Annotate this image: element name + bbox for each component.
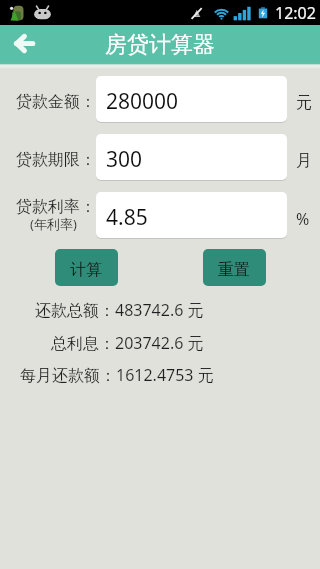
staticText: 贷款期限： [16, 150, 96, 170]
staticText: % [296, 208, 310, 230]
button[interactable]: 4.85 [96, 192, 287, 238]
button[interactable]: 280000 [96, 76, 287, 122]
staticText: 月 [296, 151, 312, 171]
staticText: 计算 [70, 260, 102, 280]
staticText: 还款总额：483742.6 元 [35, 299, 204, 321]
button[interactable]: 300 [96, 134, 287, 180]
staticText: 贷款金额： [16, 92, 96, 112]
staticText: 12:02 [275, 2, 316, 24]
staticText: 280000 [106, 87, 179, 116]
button[interactable]: Back [5, 27, 41, 63]
staticText: 4.85 [106, 203, 148, 232]
staticText: 300 [106, 145, 143, 174]
staticText: 贷款利率： [16, 197, 96, 217]
staticText: 重置 [218, 260, 250, 280]
staticText: 每月还款额：1612.4753 元 [20, 364, 214, 386]
staticText: (年利率) [30, 215, 77, 233]
staticText: 总利息：203742.6 元 [51, 332, 204, 354]
button[interactable]: 计算 [55, 249, 118, 286]
staticText: 房贷计算器 [105, 31, 215, 59]
staticText: 元 [296, 93, 312, 113]
button[interactable]: 重置 [203, 249, 266, 286]
